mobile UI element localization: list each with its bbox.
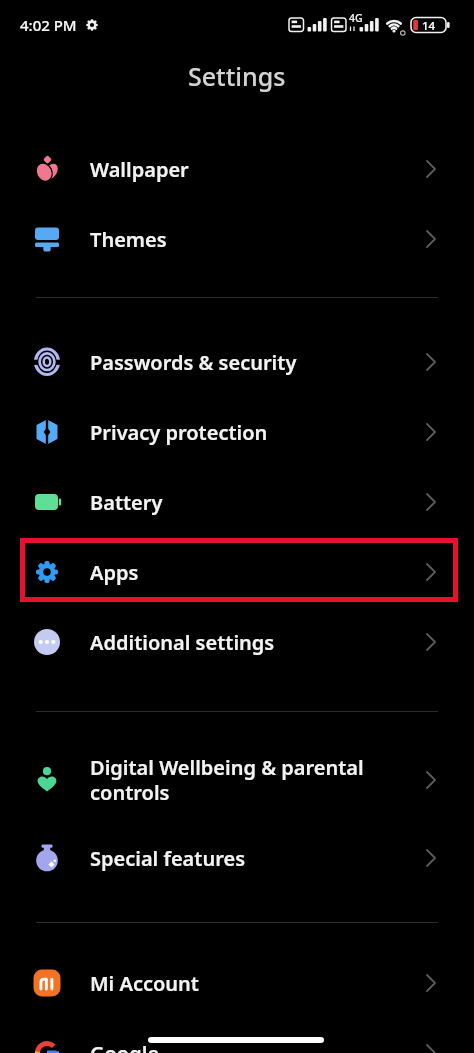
staticText: Digital Wellbeing & parental controls bbox=[90, 754, 425, 806]
button[interactable]: Themes bbox=[0, 204, 474, 274]
button[interactable]: Digital Wellbeing & parental controls bbox=[0, 737, 474, 823]
button[interactable]: Battery bbox=[0, 467, 474, 537]
button[interactable]: Wallpaper bbox=[0, 134, 474, 204]
button[interactable]: Special features bbox=[0, 823, 474, 893]
button[interactable]: Passwords & security bbox=[0, 327, 474, 397]
staticText: Themes bbox=[90, 226, 425, 253]
staticText: Apps bbox=[90, 559, 425, 586]
staticText: Settings bbox=[188, 59, 286, 93]
staticText: Google bbox=[90, 1040, 425, 1053]
button[interactable]: Google bbox=[0, 1018, 474, 1053]
staticText: Mi Account bbox=[90, 970, 425, 997]
button[interactable]: Additional settings bbox=[0, 607, 474, 677]
staticText: Wallpaper bbox=[90, 156, 425, 183]
staticText: 14 bbox=[422, 18, 436, 34]
staticText: Privacy protection bbox=[90, 419, 425, 446]
button[interactable]: Mi Account bbox=[0, 948, 474, 1018]
staticText: Special features bbox=[90, 845, 425, 872]
button[interactable]: Apps bbox=[0, 537, 474, 607]
staticText: Passwords & security bbox=[90, 349, 425, 376]
staticText: Battery bbox=[90, 489, 425, 516]
staticText: Additional settings bbox=[90, 629, 425, 656]
staticText: 4:02 PM bbox=[20, 15, 77, 35]
staticText: 4G bbox=[349, 11, 363, 25]
button[interactable]: Privacy protection bbox=[0, 397, 474, 467]
